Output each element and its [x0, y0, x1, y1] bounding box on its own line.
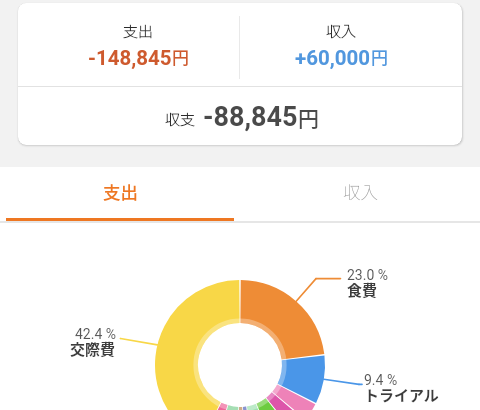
staticText: 収支 — [165, 108, 195, 130]
staticText: トライアル — [364, 384, 439, 406]
staticText: 収入 — [343, 179, 378, 204]
staticText: 42.4 % — [74, 326, 116, 342]
staticText: +60,000 — [295, 46, 371, 70]
staticText: 23.0 % — [347, 267, 389, 283]
staticText: -88,845 — [203, 101, 298, 133]
staticText: 円 — [298, 102, 319, 132]
button[interactable]: 支出 — [18, 3, 239, 88]
staticText: 食費 — [347, 279, 378, 301]
button[interactable]: 42.4 % — [0, 326, 116, 364]
button[interactable]: 9.4 % — [364, 372, 480, 410]
button[interactable]: 収入 — [240, 165, 480, 217]
button[interactable]: 収入 — [240, 3, 462, 88]
staticText: 交際費 — [70, 338, 116, 360]
button[interactable]: 23.0 % — [347, 267, 477, 305]
staticText: 9.4 % — [364, 372, 398, 388]
button[interactable]: 支出 — [0, 165, 240, 217]
staticText: 支出 — [103, 179, 138, 204]
staticText: 収入 — [326, 20, 356, 42]
staticText: 円 — [371, 44, 388, 69]
staticText: 支出 — [123, 20, 153, 42]
staticText: -148,845 — [88, 46, 172, 70]
staticText: 円 — [172, 44, 189, 69]
button[interactable]: 収支 — [18, 87, 462, 145]
